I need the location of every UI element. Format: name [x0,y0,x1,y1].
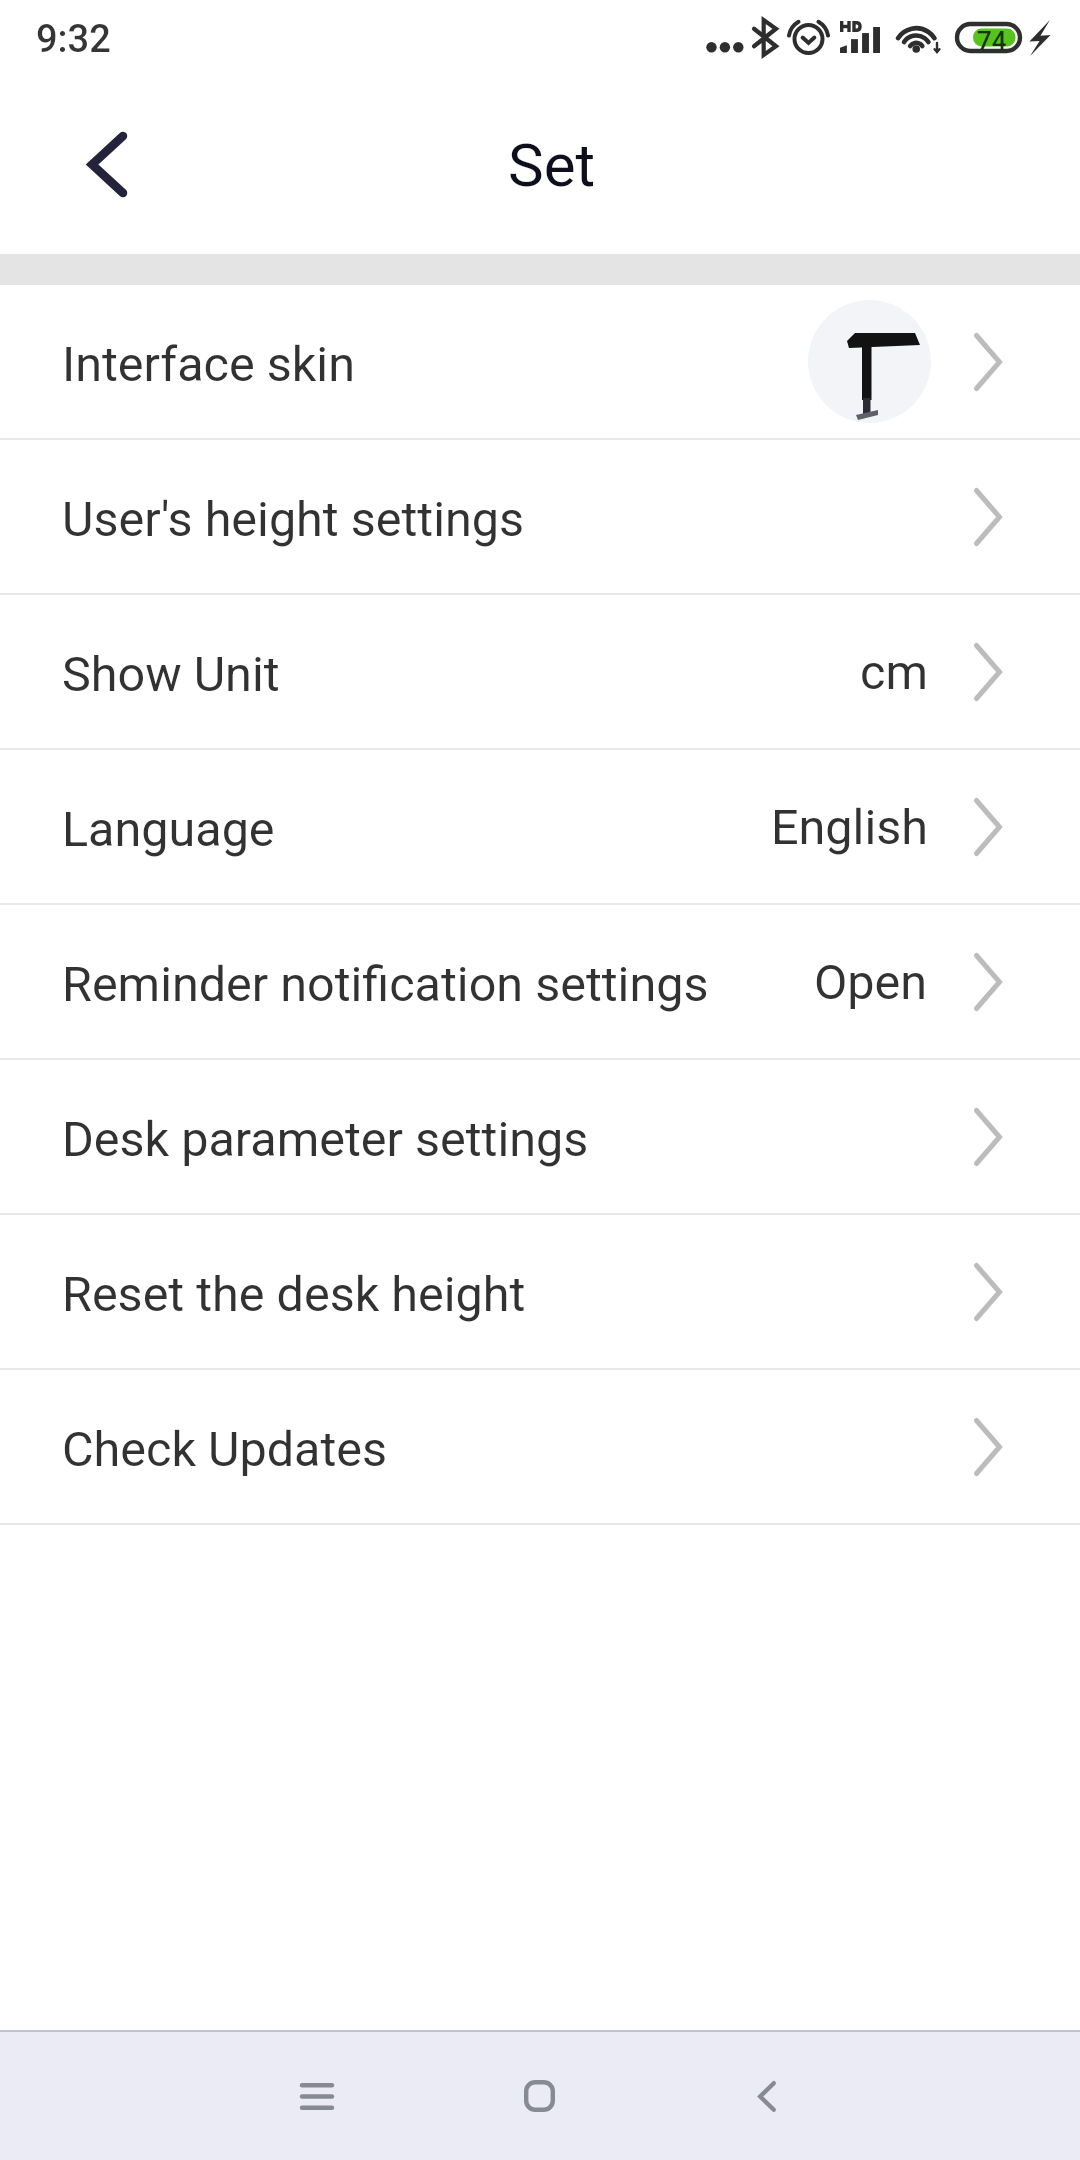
button[interactable]: Reminder notification settings [0,905,1080,1058]
button[interactable]: Back [712,2041,822,2151]
staticText: Desk parameter settings [62,1111,589,1168]
staticText: Set [508,130,596,200]
staticText: 9:32 [36,17,111,62]
button[interactable]: Show Unit [0,595,1080,748]
button[interactable]: Desk parameter settings [0,1060,1080,1213]
button[interactable]: Back [59,116,156,213]
button[interactable]: Home [484,2041,594,2151]
button[interactable]: Check Updates [0,1370,1080,1523]
button[interactable]: Recent apps [262,2041,372,2151]
staticText: Open [814,954,928,1011]
button[interactable]: Language [0,750,1080,903]
staticText: Interface skin [62,336,355,393]
staticText: 74 [977,26,1007,56]
staticText: Language [62,801,275,858]
staticText: Show Unit [62,646,280,703]
button[interactable]: Interface skin [0,285,1080,438]
staticText: cm [860,644,928,701]
staticText: Reset the desk height [62,1266,526,1323]
staticText: User's height settings [62,491,525,548]
staticText: English [771,799,928,856]
staticText: Reminder notification settings [62,956,709,1013]
staticText: Check Updates [62,1421,388,1478]
button[interactable]: User's height settings [0,440,1080,593]
button[interactable]: Reset the desk height [0,1215,1080,1368]
